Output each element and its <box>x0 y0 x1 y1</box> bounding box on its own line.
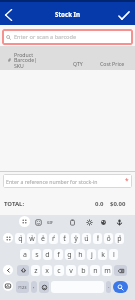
button[interactable] <box>39 281 49 293</box>
staticText: g <box>67 250 72 260</box>
button[interactable]: Enter a reference number for stock-in <box>3 174 132 188</box>
staticText: m <box>104 266 111 276</box>
staticText: SKU <box>14 62 24 69</box>
staticText: b <box>81 266 86 276</box>
button[interactable]: e <box>38 233 47 244</box>
button[interactable]: n <box>90 265 100 276</box>
button[interactable]: m <box>102 265 112 276</box>
staticText: k <box>101 250 105 260</box>
button[interactable]: f <box>54 249 63 260</box>
button[interactable]: t <box>60 233 69 244</box>
button[interactable] <box>17 265 29 276</box>
button[interactable]: ?123 <box>16 281 29 293</box>
button[interactable]: Clipboard <box>67 217 77 227</box>
button[interactable]: Insert image <box>3 281 13 291</box>
staticText: Barcode| <box>14 56 37 63</box>
staticText: 8 <box>97 234 100 239</box>
staticText: Enter a reference number for stock-in <box>6 178 98 185</box>
button[interactable]: Confirm <box>113 2 135 25</box>
button[interactable]: x <box>42 265 52 276</box>
button[interactable]: Enter or scan a barcode <box>2 29 133 45</box>
staticText: t <box>63 234 66 244</box>
staticText: 5 <box>64 234 67 239</box>
button[interactable]: v <box>66 265 76 276</box>
staticText: 0 <box>119 234 122 239</box>
button[interactable]: Voice input <box>114 217 124 227</box>
staticText: GIF <box>47 220 53 225</box>
button[interactable]: Stickers <box>33 217 43 227</box>
staticText: c <box>57 266 61 276</box>
button[interactable]: j <box>87 249 96 260</box>
staticText: 1 <box>20 234 23 239</box>
staticText: 2 <box>31 234 34 239</box>
button[interactable]: a <box>20 249 30 260</box>
staticText: u <box>84 234 89 244</box>
button[interactable]: b <box>78 265 88 276</box>
staticText: Stock In <box>55 10 81 18</box>
button[interactable]: Previous <box>3 265 13 275</box>
staticText: 0.0 <box>95 200 104 208</box>
staticText: f <box>57 250 60 260</box>
button[interactable]: Keyboard layouts <box>3 233 13 243</box>
staticText: Product <box>14 51 34 58</box>
staticText: e <box>41 234 45 244</box>
button[interactable]: w <box>27 233 36 244</box>
staticText: 9 <box>108 234 111 239</box>
button[interactable]: k <box>98 249 107 260</box>
button[interactable]: Keyboard menu <box>19 216 30 227</box>
staticText: # <box>8 57 11 63</box>
button[interactable]: q <box>15 233 25 244</box>
staticText: * <box>125 176 129 185</box>
staticText: s <box>35 250 39 260</box>
staticText: w <box>29 234 35 244</box>
staticText: 4 <box>53 234 56 239</box>
staticText: o <box>106 234 111 244</box>
button[interactable]: Themes <box>98 217 108 227</box>
staticText: 6 <box>75 234 78 239</box>
staticText: QTY <box>73 60 83 67</box>
button[interactable]: Back <box>0 2 16 25</box>
button[interactable]: h <box>76 249 85 260</box>
button[interactable]: y <box>71 233 80 244</box>
button[interactable]: Settings <box>84 217 94 227</box>
button[interactable]: . <box>106 281 111 293</box>
staticText: z <box>34 266 38 276</box>
button[interactable]: r <box>49 233 58 244</box>
staticText: ?123 <box>18 285 27 290</box>
button[interactable]: l <box>109 249 118 260</box>
staticText: j <box>91 250 93 260</box>
staticText: r <box>52 234 55 244</box>
staticText: y <box>74 234 78 244</box>
button[interactable]: s <box>32 249 41 260</box>
staticText: . <box>108 282 110 290</box>
button[interactable]: c <box>54 265 64 276</box>
staticText: i <box>97 234 99 244</box>
button[interactable]: d <box>43 249 52 260</box>
button[interactable]: u <box>82 233 91 244</box>
staticText: n <box>93 266 98 276</box>
staticText: Enter or scan a barcode <box>14 33 77 41</box>
staticText: 3 <box>42 234 45 239</box>
button[interactable]: g <box>65 249 74 260</box>
staticText: x <box>45 266 49 276</box>
button[interactable]: Search <box>113 281 128 293</box>
button[interactable] <box>114 265 127 276</box>
staticText: 7 <box>86 234 89 239</box>
staticText: l <box>113 250 115 260</box>
button[interactable]: p <box>115 233 124 244</box>
staticText: d <box>45 250 50 260</box>
staticText: a <box>23 250 27 260</box>
button[interactable]: o <box>104 233 113 244</box>
staticText: , <box>33 282 35 290</box>
staticText: p <box>117 234 122 244</box>
staticText: h <box>78 250 83 260</box>
staticText: q <box>18 234 23 244</box>
staticText: TOTAL: <box>4 200 25 208</box>
button[interactable]: GIF <box>45 217 55 227</box>
button[interactable]: z <box>31 265 40 276</box>
button[interactable]: , <box>31 281 37 293</box>
staticText: $0.00 <box>110 200 126 208</box>
staticText: v <box>69 266 73 276</box>
button[interactable]: i <box>93 233 102 244</box>
